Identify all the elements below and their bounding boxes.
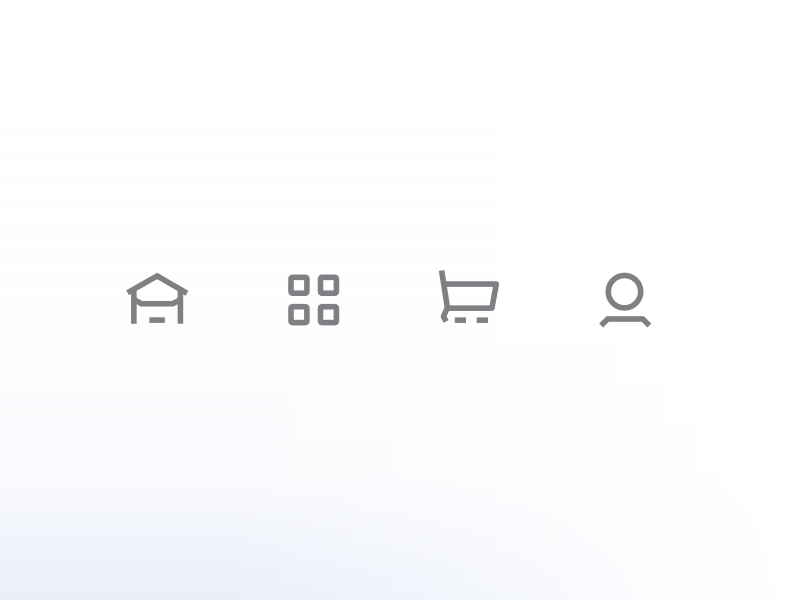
button[interactable]: Home [79,266,235,330]
button[interactable]: Browse [235,266,391,330]
button[interactable]: Account [547,266,703,330]
button[interactable]: Cart [391,266,547,330]
